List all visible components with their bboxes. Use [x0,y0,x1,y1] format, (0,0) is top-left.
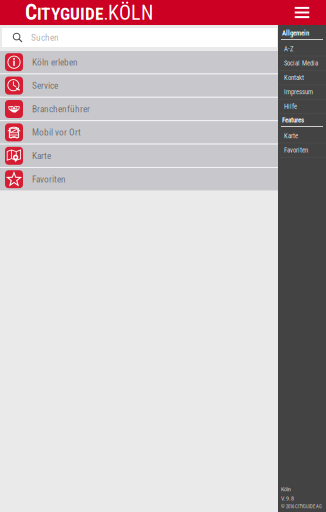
button[interactable]: Karte [0,145,278,167]
button[interactable]: Favoriten [278,143,326,158]
staticText: V.9.8 [281,495,294,502]
staticText: KÖLN [108,1,153,25]
button[interactable]: Favoriten [0,168,278,190]
button[interactable]: Mobil vor Ort [0,121,278,144]
staticText: ITYGUIDE [37,4,104,24]
staticText: Favoriten [32,174,66,185]
staticText: © 2016 CITYGUIDE AG [281,504,322,509]
staticText: A-Z [284,45,293,53]
button[interactable]: Hilfe [278,100,326,114]
staticText: Kontakt [284,74,304,81]
button[interactable]: Social Media [278,56,326,71]
staticText: . [104,7,108,23]
button[interactable]: Köln erleben [0,51,278,73]
staticText: Mobil vor Ort [32,127,81,138]
staticText: Impressum [284,88,313,96]
staticText: Karte [32,150,51,161]
staticText: Suchen [31,32,59,43]
staticText: Allgemein [282,29,309,37]
staticText: Social Media [284,59,318,67]
button[interactable]: Menu [295,7,309,18]
staticText: Hilfe [284,102,297,110]
button[interactable]: Karte [278,129,326,143]
button[interactable]: A-Z [278,42,326,56]
button[interactable]: Service [0,74,278,97]
button[interactable]: Branchenführer [0,98,278,120]
staticText: Köln [281,486,291,493]
staticText: Karte [284,132,298,140]
staticText: Köln erleben [32,57,78,68]
button[interactable]: Impressum [278,85,326,100]
staticText: Branchenführer [32,103,90,114]
staticText: C [25,0,37,25]
staticText: Features [282,116,304,124]
button[interactable]: Kontakt [278,71,326,85]
staticText: Service [32,80,58,91]
staticText: Favoriten [284,146,308,154]
